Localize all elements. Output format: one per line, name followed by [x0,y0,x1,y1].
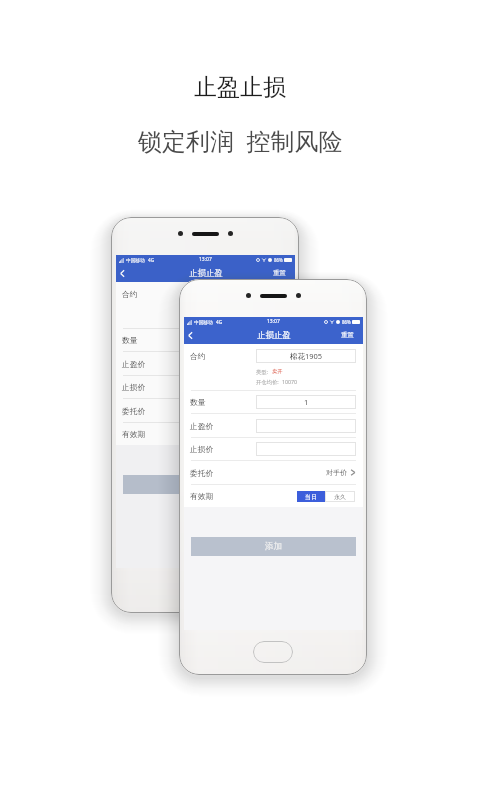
staticText: 中国移动 [194,319,213,325]
staticText: 重置 [341,331,354,339]
button[interactable] [256,442,356,456]
staticText: 合约 [122,289,138,299]
staticText: 永久 [334,493,346,501]
staticText: 13:07 [267,318,280,325]
button[interactable]: 委托价 [190,461,356,484]
staticText: 10070 [282,378,298,385]
button[interactable] [188,380,288,394]
staticText: 添加 [197,479,214,490]
button[interactable]: 合约 [122,282,288,306]
staticText: 止损止盈 [189,268,223,279]
button[interactable] [256,419,356,433]
button[interactable]: 棉花1905 [188,287,288,301]
button[interactable]: 永久 [257,429,287,440]
button[interactable]: 当日 [229,429,257,440]
button[interactable]: 添加 [123,475,288,494]
staticText: 1 [304,397,309,407]
staticText: 10070 [214,316,230,323]
button[interactable]: 1 [256,395,356,409]
staticText: 止盈价 [190,421,214,431]
button[interactable]: Home [253,641,293,663]
staticText: 重置 [273,269,286,277]
staticText: 86% [274,257,283,263]
button[interactable] [188,357,288,371]
staticText: 对手价 [326,468,347,477]
button[interactable]: 添加 [191,537,356,556]
staticText: 有效期 [190,491,214,501]
staticText: 锁定利润 控制风险 [138,124,343,157]
staticText: 卖开 [272,368,283,375]
staticText: 有效期 [122,429,146,439]
button[interactable]: 有效期 [190,485,356,507]
staticText: 止盈价 [122,359,146,369]
staticText: 对手价 [258,406,279,415]
button[interactable]: 1 [188,333,288,347]
staticText: 永久 [266,431,278,439]
staticText: 中国移动 [126,257,145,263]
staticText: 委托价 [122,406,146,416]
staticText: 棉花1905 [290,351,323,361]
staticText: 止损价 [190,444,214,454]
button[interactable]: 委托价 [122,399,288,422]
button[interactable]: 重置 [341,326,354,344]
staticText: 委托价 [190,468,214,478]
button[interactable]: 止盈价 [122,352,288,375]
staticText: 止损止盈 [257,330,291,341]
staticText: 4G [216,319,223,325]
button[interactable]: 止损价 [190,438,356,460]
staticText: 合约 [190,351,206,361]
staticText: 添加 [265,541,282,552]
staticText: 数量 [190,397,206,407]
staticText: 棉花1905 [222,289,255,299]
button[interactable]: 数量 [190,391,356,413]
button[interactable]: 重置 [273,264,286,282]
button[interactable]: 止损价 [122,376,288,398]
staticText: 数量 [122,335,138,345]
button[interactable]: 永久 [325,491,355,502]
staticText: 当日 [305,493,317,501]
staticText: 当日 [237,431,249,439]
button[interactable]: 棉花1905 [256,349,356,363]
staticText: 4G [148,257,155,263]
button[interactable]: 有效期 [122,423,288,445]
staticText: 13:07 [199,256,212,263]
staticText: 开仓均价: [188,316,211,323]
button[interactable]: 止盈价 [190,414,356,437]
button[interactable]: 数量 [122,329,288,351]
staticText: 86% [342,319,351,325]
staticText: 止损价 [122,382,146,392]
staticText: 开仓均价: [256,378,279,385]
button[interactable]: 当日 [297,491,325,502]
staticText: 1 [236,335,241,345]
staticText: 止盈止损 [194,73,286,102]
staticText: 类型: [256,368,269,375]
button[interactable]: Back [116,264,129,282]
button[interactable]: Back [184,326,197,344]
button[interactable]: 合约 [190,344,356,368]
